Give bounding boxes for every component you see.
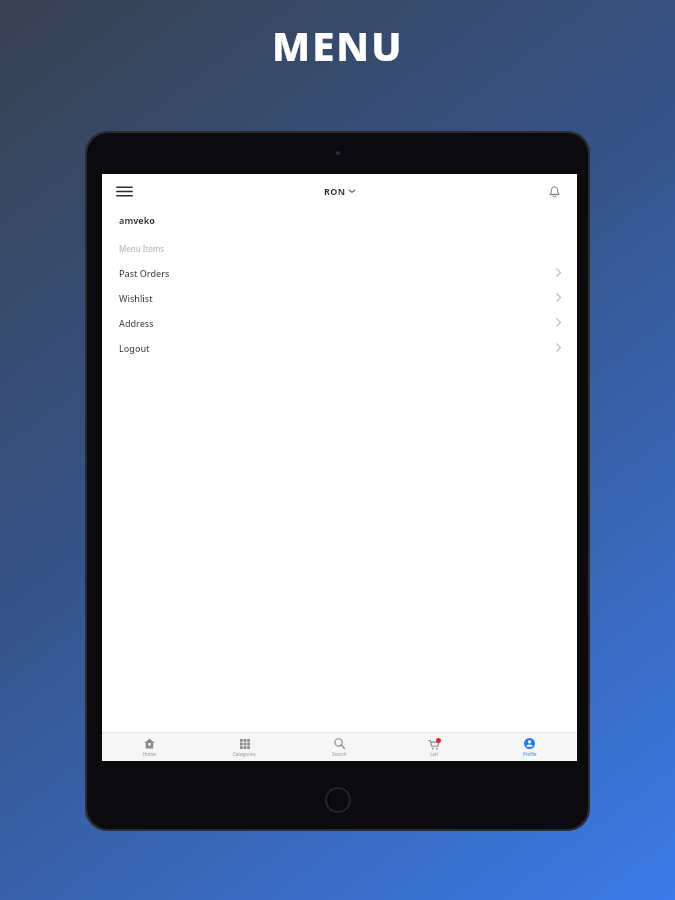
staticText: Past Orders xyxy=(119,267,170,279)
button[interactable]: Past Orders xyxy=(102,260,577,285)
staticText: Address xyxy=(119,317,154,329)
staticText: Categories xyxy=(233,751,256,757)
button[interactable]: Profile xyxy=(482,733,577,761)
button[interactable]: Address xyxy=(102,310,577,335)
staticText: amveko xyxy=(119,214,155,226)
staticText: RON xyxy=(324,185,346,197)
button[interactable]: Notifications xyxy=(541,178,567,204)
staticText: MENU xyxy=(272,18,404,72)
staticText: Wishlist xyxy=(119,292,153,304)
button[interactable]: Search xyxy=(292,733,387,761)
button[interactable]: Home xyxy=(102,733,197,761)
button[interactable]: Categories xyxy=(197,733,292,761)
button[interactable]: Open navigation menu xyxy=(110,177,138,205)
button[interactable]: Logout xyxy=(102,335,577,360)
staticText: Search xyxy=(332,751,347,757)
staticText: Logout xyxy=(119,342,150,354)
button[interactable]: Wishlist xyxy=(102,285,577,310)
button[interactable]: cart xyxy=(387,733,482,761)
staticText: cart xyxy=(430,751,439,757)
staticText: Menu Items xyxy=(119,243,165,254)
button[interactable]: RON xyxy=(324,185,355,197)
staticText: Profile xyxy=(523,751,537,757)
staticText: Home xyxy=(143,751,156,757)
